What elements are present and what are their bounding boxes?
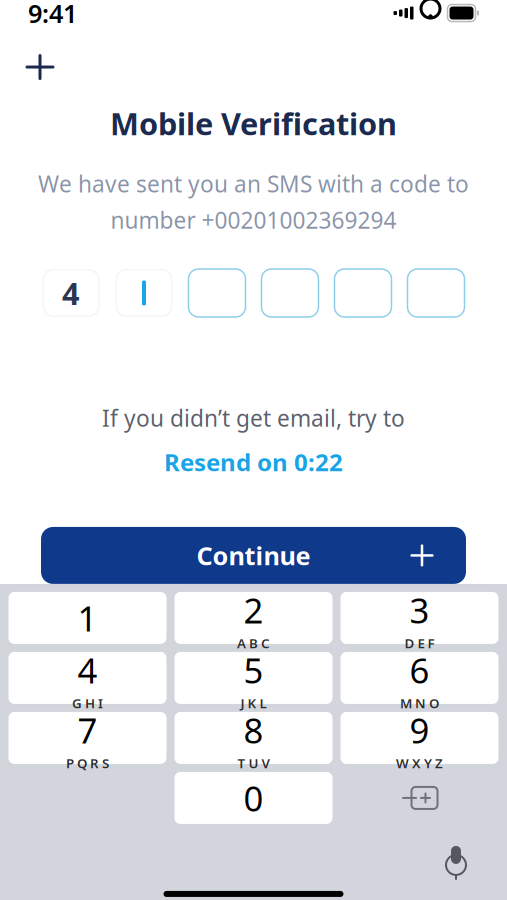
button[interactable]: 9 [340, 712, 498, 764]
staticText: Mobile Verification [110, 103, 397, 144]
staticText: 9 [409, 707, 429, 753]
button[interactable]: Resend on 0:22 [154, 441, 353, 483]
staticText: 6 [409, 647, 429, 693]
button[interactable]: 3 [340, 592, 498, 644]
button[interactable]: 5 [174, 652, 332, 704]
button[interactable]: 4 [8, 652, 166, 704]
staticText: 0 [243, 775, 263, 821]
staticText: 9:41 [28, 0, 77, 30]
staticText: Continue [196, 539, 310, 572]
button[interactable]: 7 [8, 712, 166, 764]
button[interactable]: Back [17, 47, 63, 87]
staticText: 3 [409, 587, 429, 633]
staticText: Resend on 0:22 [164, 446, 343, 478]
staticText: G H I [72, 694, 103, 712]
button[interactable]: 1 [8, 592, 166, 644]
staticText: 7 [77, 707, 97, 753]
staticText: If you didn’t get email, try to [102, 403, 405, 433]
staticText: 1 [77, 595, 97, 641]
staticText: J K L [240, 694, 266, 712]
staticText: 4 [62, 273, 80, 313]
button[interactable]: Delete [340, 772, 498, 824]
staticText: T U V [237, 754, 269, 772]
staticText: 4 [77, 647, 97, 693]
button[interactable]: 6 [340, 652, 498, 704]
button[interactable]: 8 [174, 712, 332, 764]
staticText: A B C [237, 634, 270, 652]
staticText: 8 [243, 707, 263, 753]
button[interactable]: 0 [174, 772, 332, 824]
staticText: P Q R S [66, 754, 109, 772]
staticText: We have sent you an SMS with a code to [38, 169, 469, 199]
staticText: D E F [404, 634, 434, 652]
staticText: M N O [400, 694, 439, 712]
staticText: 5 [243, 647, 263, 693]
button[interactable]: 2 [174, 592, 332, 644]
button[interactable]: Continue [41, 527, 466, 584]
staticText: 2 [243, 587, 263, 633]
staticText: W X Y Z [396, 754, 443, 772]
staticText: number +00201002369294 [110, 205, 396, 235]
button[interactable]: Dictation [429, 836, 483, 890]
